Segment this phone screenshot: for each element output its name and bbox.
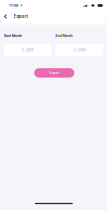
button[interactable]: Export [34,68,74,78]
staticText: Start Month [4,33,22,38]
staticText: 3, 2026 [22,48,34,52]
staticText: 3, 2026 [73,48,85,52]
button[interactable]: Back [3,12,8,20]
staticText: Export [14,14,29,19]
staticText: Export [49,71,59,75]
button[interactable]: 3, 2026 [56,44,103,56]
staticText: 11:03 [9,3,18,8]
button[interactable]: 3, 2026 [4,44,51,56]
staticText: End Month [56,33,73,38]
